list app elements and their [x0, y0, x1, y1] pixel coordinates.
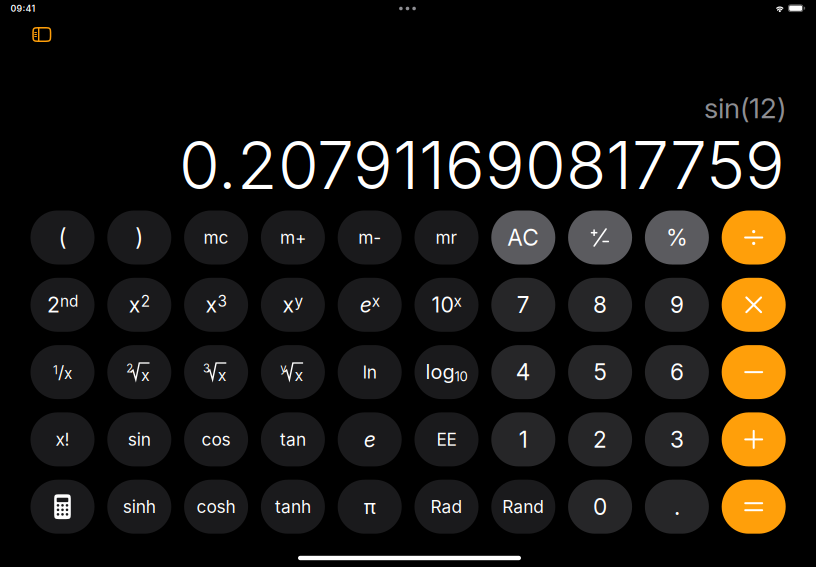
- button[interactable]: sinh: [107, 480, 171, 534]
- button[interactable]: Subtract: [722, 345, 786, 399]
- button[interactable]: Equals: [722, 480, 786, 534]
- button[interactable]: tanh: [261, 480, 325, 534]
- button[interactable]: log10: [414, 345, 478, 399]
- staticText: e: [364, 426, 376, 452]
- button[interactable]: x!: [30, 412, 94, 466]
- staticText: sin(12): [704, 91, 786, 125]
- button[interactable]: EE: [414, 412, 478, 466]
- button[interactable]: AC: [491, 210, 555, 264]
- button[interactable]: 4: [491, 345, 555, 399]
- staticText: 6: [670, 358, 684, 386]
- staticText: ex: [360, 292, 380, 317]
- staticText: (: [58, 224, 66, 251]
- button[interactable]: %: [645, 210, 709, 264]
- staticText: 5: [594, 358, 607, 386]
- button[interactable]: mc: [184, 210, 248, 264]
- staticText: x!: [55, 429, 69, 450]
- staticText: Rad: [430, 496, 462, 517]
- staticText: 2: [593, 426, 607, 453]
- staticText: 1: [519, 426, 528, 453]
- staticText: tan: [280, 429, 306, 450]
- button[interactable]: x3: [184, 278, 248, 332]
- staticText: 1/x: [53, 362, 72, 382]
- button[interactable]: ex: [338, 278, 402, 332]
- button[interactable]: m-: [338, 210, 402, 264]
- button[interactable]: Add: [722, 412, 786, 466]
- staticText: .: [674, 493, 680, 520]
- staticText: 0: [593, 493, 607, 520]
- button[interactable]: Multiply: [722, 278, 786, 332]
- button[interactable]: e: [338, 412, 402, 466]
- staticText: 10x: [431, 292, 461, 317]
- staticText: 8: [593, 291, 607, 318]
- staticText: 3: [203, 362, 210, 375]
- staticText: x: [295, 365, 304, 385]
- button[interactable]: ): [107, 210, 171, 264]
- button[interactable]: Divide: [722, 210, 786, 264]
- staticText: EE: [436, 429, 456, 450]
- staticText: 09:41: [10, 3, 35, 14]
- staticText: 3: [670, 426, 684, 453]
- staticText: 2: [126, 362, 133, 375]
- staticText: %: [666, 224, 688, 251]
- button[interactable]: 1: [491, 412, 555, 466]
- staticText: y: [280, 362, 286, 375]
- staticText: 9: [670, 291, 684, 318]
- button[interactable]: Show Sidebar: [27, 21, 57, 47]
- button[interactable]: y root of x: [261, 345, 325, 399]
- staticText: sinh: [123, 496, 156, 517]
- staticText: x: [141, 365, 150, 385]
- button[interactable]: 2 root of x: [107, 345, 171, 399]
- staticText: xy: [282, 292, 303, 317]
- button[interactable]: 7: [491, 278, 555, 332]
- button[interactable]: π: [338, 480, 402, 534]
- button[interactable]: Rad: [414, 480, 478, 534]
- staticText: 4: [516, 358, 531, 386]
- button[interactable]: Basic Calculator: [30, 480, 94, 534]
- button[interactable]: tan: [261, 412, 325, 466]
- staticText: sin: [128, 429, 151, 450]
- staticText: cos: [202, 429, 231, 450]
- staticText: AC: [507, 224, 539, 251]
- staticText: 0.207911690817759: [179, 125, 785, 205]
- button[interactable]: xy: [261, 278, 325, 332]
- button[interactable]: mr: [414, 210, 478, 264]
- staticText: mr: [435, 227, 457, 248]
- button[interactable]: 10x: [414, 278, 478, 332]
- button[interactable]: cos: [184, 412, 248, 466]
- button[interactable]: 8: [568, 278, 632, 332]
- staticText: cosh: [197, 496, 236, 517]
- button[interactable]: 6: [645, 345, 709, 399]
- staticText: tanh: [275, 496, 311, 517]
- staticText: x2: [129, 292, 150, 317]
- staticText: mc: [204, 227, 229, 248]
- button[interactable]: 3: [645, 412, 709, 466]
- staticText: ): [135, 224, 143, 251]
- button[interactable]: ln: [338, 345, 402, 399]
- button[interactable]: One over x: [30, 345, 94, 399]
- button[interactable]: 9: [645, 278, 709, 332]
- button[interactable]: sin: [107, 412, 171, 466]
- button[interactable]: 2nd: [30, 278, 94, 332]
- button[interactable]: .: [645, 480, 709, 534]
- staticText: x3: [206, 292, 227, 317]
- staticText: 7: [517, 291, 530, 318]
- button[interactable]: m+: [261, 210, 325, 264]
- button[interactable]: x2: [107, 278, 171, 332]
- button[interactable]: 5: [568, 345, 632, 399]
- staticText: log10: [425, 360, 467, 384]
- staticText: m-: [358, 227, 381, 248]
- staticText: ln: [363, 362, 377, 383]
- button[interactable]: Toggle sign: [568, 210, 632, 264]
- button[interactable]: 3 root of x: [184, 345, 248, 399]
- staticText: x: [218, 365, 227, 385]
- button[interactable]: cosh: [184, 480, 248, 534]
- button[interactable]: 2: [568, 412, 632, 466]
- staticText: Rand: [502, 496, 544, 517]
- button[interactable]: (: [30, 210, 94, 264]
- staticText: m+: [280, 227, 306, 248]
- staticText: π: [364, 495, 376, 519]
- staticText: 2nd: [47, 292, 78, 317]
- button[interactable]: 0: [568, 480, 632, 534]
- button[interactable]: Rand: [491, 480, 555, 534]
